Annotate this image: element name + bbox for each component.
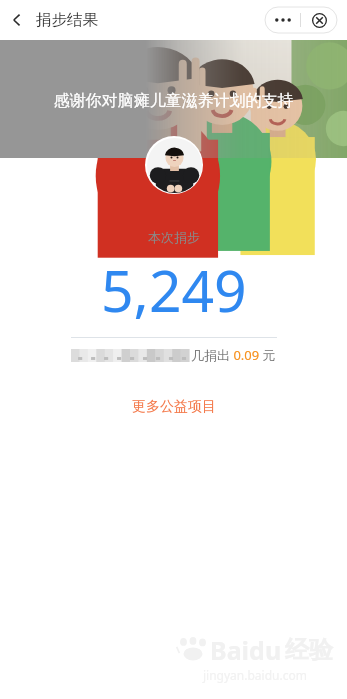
staticText: 几捐出 0.09 元 [191,346,276,364]
staticText: 捐步结果 [36,10,98,30]
button[interactable]: 更多公益项目 [120,394,228,420]
staticText: 5,249 [101,251,247,329]
staticText: 经验 [285,635,333,665]
button[interactable]: Profile photo [145,136,203,194]
button[interactable]: Back [0,3,34,37]
staticText: jingyan.baidu.com [203,667,307,683]
staticText: Baidu [210,633,282,667]
staticText: 更多公益项目 [132,398,216,416]
button[interactable]: More options [265,7,300,33]
button[interactable]: Close [301,7,337,33]
staticText: 感谢你对脑瘫儿童滋养计划的支持 [0,91,347,111]
staticText: 本次捐步 [148,229,200,245]
